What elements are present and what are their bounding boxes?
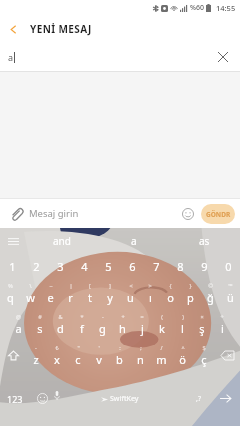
button[interactable]: :: [109, 340, 130, 371]
staticText: a: [15, 321, 22, 336]
button[interactable]: ]: [100, 278, 120, 309]
button[interactable]: @: [8, 309, 29, 340]
button[interactable]: Keyboard menu: [0, 228, 26, 254]
button[interactable]: ™: [220, 278, 240, 309]
button[interactable]: \: [20, 278, 40, 309]
staticText: [: [89, 282, 91, 289]
button[interactable]: 2: [24, 254, 48, 278]
staticText: -: [102, 313, 104, 320]
staticText: ™: [228, 282, 233, 289]
button[interactable]: Mesaj girin: [29, 199, 178, 228]
button[interactable]: #: [29, 309, 50, 340]
staticText: j: [141, 321, 144, 336]
staticText: <: [129, 282, 133, 289]
staticText: ç: [201, 352, 207, 367]
button[interactable]: Space: [54, 371, 186, 426]
button[interactable]: Emoji keyboard: [30, 371, 54, 426]
button[interactable]: 5: [96, 254, 120, 278]
button[interactable]: ×: [192, 309, 212, 340]
button[interactable]: +: [112, 309, 132, 340]
button[interactable]: Clear: [212, 46, 234, 68]
staticText: >: [148, 282, 152, 289]
staticText: a: [8, 51, 14, 63]
button[interactable]: as: [169, 228, 240, 254]
staticText: ]: [109, 282, 111, 289]
staticText: ₺: [55, 344, 59, 351]
staticText: 0: [225, 259, 232, 274]
staticText: 7: [153, 259, 160, 274]
staticText: ü: [227, 290, 234, 305]
staticText: ö: [179, 352, 186, 367]
staticText: s: [37, 321, 43, 336]
staticText: ~: [49, 282, 53, 289]
button[interactable]: ": [67, 340, 88, 371]
button[interactable]: <: [120, 278, 140, 309]
staticText: g: [99, 321, 106, 336]
button[interactable]: ÷: [212, 309, 232, 340]
button[interactable]: ': [88, 340, 109, 371]
button[interactable]: Send: [210, 371, 240, 426]
button[interactable]: a: [8, 42, 212, 71]
staticText: n: [137, 352, 144, 367]
button[interactable]: &: [50, 309, 71, 340]
button[interactable]: ©: [200, 278, 220, 309]
staticText: SwiftKey: [110, 394, 139, 404]
staticText: 1: [9, 259, 16, 274]
button[interactable]: 4: [72, 254, 96, 278]
button[interactable]: GÖNDR: [201, 204, 235, 224]
staticText: 4: [81, 259, 88, 274]
button[interactable]: [: [80, 278, 100, 309]
button[interactable]: Emoji: [178, 204, 198, 224]
button[interactable]: 3: [48, 254, 72, 278]
staticText: ğ: [207, 290, 214, 305]
staticText: 2: [33, 259, 40, 274]
staticText: w: [26, 290, 35, 305]
button[interactable]: Attach: [6, 204, 26, 224]
staticText: ş: [199, 321, 205, 336]
staticText: 9: [201, 259, 208, 274]
button[interactable]: and: [26, 228, 98, 254]
button[interactable]: Back: [0, 16, 26, 42]
staticText: d: [57, 321, 64, 336]
button[interactable]: 0: [216, 254, 240, 278]
button[interactable]: ,?: [186, 371, 210, 426]
button[interactable]: 1: [0, 254, 24, 278]
staticText: }: [189, 282, 192, 289]
button[interactable]: 123: [0, 371, 30, 426]
staticText: %60: [190, 3, 204, 13]
button[interactable]: }: [180, 278, 200, 309]
staticText: 14:55: [216, 3, 236, 13]
button[interactable]: ~: [40, 278, 60, 309]
button[interactable]: (: [152, 309, 172, 340]
button[interactable]: =: [132, 309, 152, 340]
button[interactable]: $: [193, 340, 214, 371]
button[interactable]: -: [26, 340, 46, 371]
button[interactable]: -: [92, 309, 112, 340]
staticText: y: [107, 290, 113, 305]
button[interactable]: 8: [168, 254, 192, 278]
button[interactable]: Shift: [0, 340, 26, 371]
button[interactable]: 7: [144, 254, 168, 278]
button[interactable]: ;: [130, 340, 151, 371]
button[interactable]: >: [140, 278, 160, 309]
staticText: YENİ MESAJ: [30, 22, 92, 36]
button[interactable]: ₺: [46, 340, 67, 371]
button[interactable]: 9: [192, 254, 216, 278]
button[interactable]: {: [160, 278, 180, 309]
button[interactable]: Backspace: [214, 340, 240, 371]
button[interactable]: ): [172, 309, 192, 340]
button[interactable]: *: [71, 309, 92, 340]
button[interactable]: /: [151, 340, 172, 371]
staticText: #: [38, 313, 42, 320]
staticText: %: [8, 282, 13, 289]
staticText: t: [88, 290, 92, 305]
button[interactable]: a: [98, 228, 169, 254]
button[interactable]: 6: [120, 254, 144, 278]
staticText: f: [80, 321, 84, 336]
staticText: ©: [208, 282, 213, 289]
button[interactable]: %: [0, 278, 20, 309]
button[interactable]: |: [60, 278, 80, 309]
staticText: *: [80, 313, 84, 320]
button[interactable]: ^: [172, 340, 193, 371]
staticText: q: [7, 290, 14, 305]
